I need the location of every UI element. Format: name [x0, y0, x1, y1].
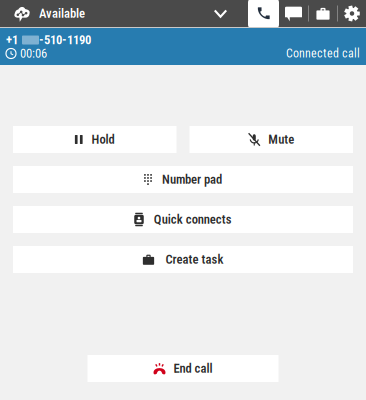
staticText: Available	[39, 6, 85, 21]
button[interactable]: Available	[0, 0, 248, 27]
staticText: +1	[6, 33, 18, 47]
staticText: Mute	[268, 132, 294, 147]
staticText: Number pad	[162, 172, 222, 187]
button[interactable]: Hold	[13, 126, 176, 153]
staticText: Connected call	[286, 46, 360, 61]
button[interactable]: Create task	[13, 246, 353, 273]
staticText: End call	[173, 361, 212, 376]
staticText: Hold	[92, 132, 115, 147]
staticText: Create task	[165, 252, 223, 267]
button[interactable]: Tasks	[309, 0, 337, 27]
button[interactable]: Number pad	[13, 166, 353, 193]
staticText: Quick connects	[154, 212, 232, 227]
button[interactable]: Settings	[338, 0, 366, 27]
button[interactable]: Quick connects	[13, 206, 353, 233]
staticText: 00:06	[20, 46, 47, 61]
button[interactable]: Voice	[248, 0, 279, 27]
button[interactable]: Chat	[279, 0, 308, 27]
staticText: -510-1190	[39, 33, 91, 47]
button[interactable]: Mute	[189, 126, 353, 153]
button[interactable]: End call	[87, 355, 278, 382]
